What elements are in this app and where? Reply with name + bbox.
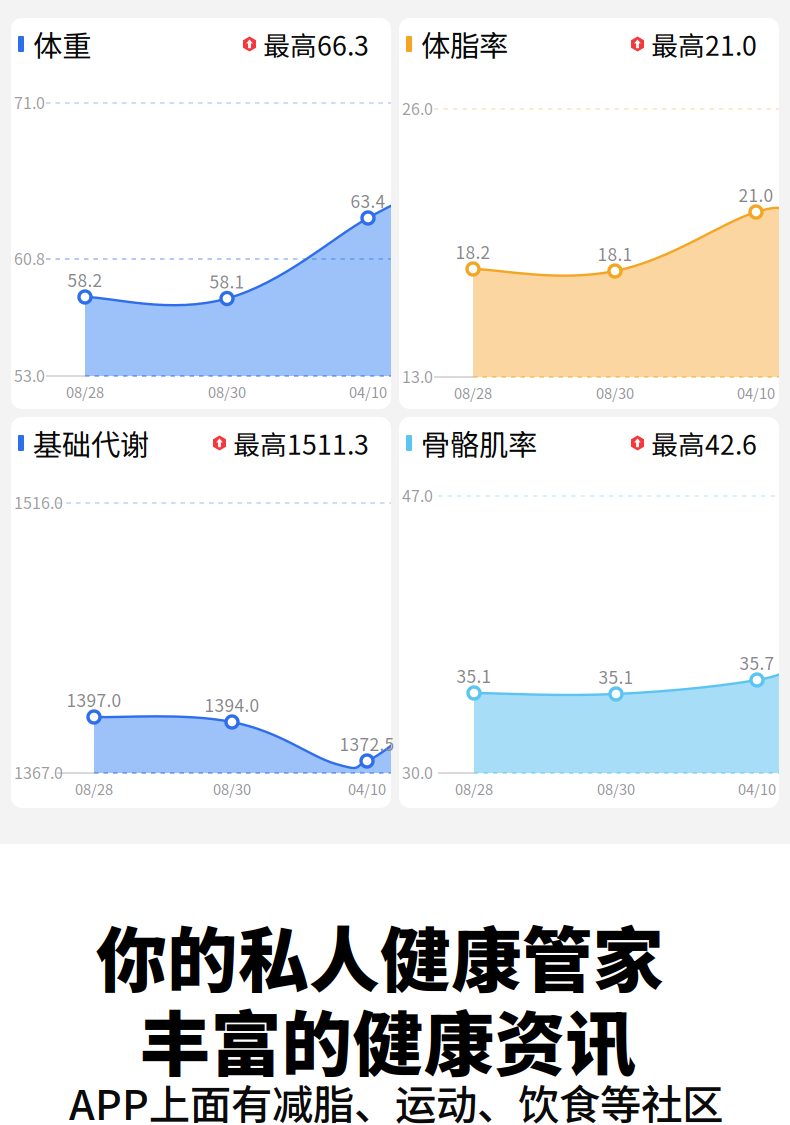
staticText: 53.0	[14, 363, 45, 387]
button[interactable]: 体脂率	[399, 18, 779, 409]
staticText: 最高21.0	[651, 25, 757, 63]
staticText: 35.1	[456, 663, 491, 688]
staticText: 08/28	[455, 778, 493, 799]
staticText: 最高66.3	[263, 25, 369, 63]
staticText: 04/10	[737, 382, 775, 403]
staticText: 63.4	[350, 188, 385, 213]
staticText: 1516.0	[14, 490, 63, 514]
button[interactable]: 骨骼肌率	[399, 417, 779, 808]
staticText: 26.0	[402, 96, 433, 120]
staticText: 最高1511.3	[233, 424, 369, 462]
staticText: 13.0	[402, 364, 433, 388]
staticText: 18.1	[597, 241, 632, 266]
staticText: 08/28	[75, 778, 113, 799]
staticText: 35.1	[598, 664, 633, 689]
staticText: 04/10	[349, 381, 387, 402]
staticText: 08/30	[213, 778, 251, 799]
staticText: APP上面有减脂、运动、饮食等社区	[69, 1072, 723, 1125]
staticText: 08/28	[454, 382, 492, 403]
staticText: 基础代谢	[33, 422, 149, 464]
staticText: 体脂率	[421, 23, 508, 65]
staticText: 71.0	[14, 90, 45, 114]
staticText: 最高42.6	[651, 424, 757, 462]
staticText: 08/30	[597, 778, 635, 799]
staticText: 21.0	[738, 182, 773, 207]
button[interactable]: 体重	[11, 18, 391, 409]
staticText: 丰富的健康资讯	[139, 988, 636, 1090]
staticText: 47.0	[402, 483, 433, 507]
staticText: 1397.0	[66, 687, 121, 712]
staticText: 18.2	[455, 239, 490, 264]
staticText: 1394.0	[204, 692, 259, 717]
staticText: 1367.0	[14, 760, 63, 784]
staticText: 08/30	[208, 381, 246, 402]
button[interactable]: 基础代谢	[11, 417, 391, 808]
staticText: 60.8	[14, 246, 45, 270]
staticText: 08/28	[66, 381, 104, 402]
staticText: 35.7	[739, 650, 774, 675]
staticText: 58.2	[67, 267, 102, 292]
staticText: 08/30	[596, 382, 634, 403]
staticText: 你的私人健康管家	[96, 904, 664, 1006]
staticText: 30.0	[402, 760, 433, 784]
staticText: 04/10	[738, 778, 776, 799]
staticText: 58.1	[209, 268, 244, 294]
staticText: 骨骼肌率	[421, 422, 537, 464]
staticText: 1372.5	[339, 731, 394, 756]
staticText: 体重	[33, 23, 91, 65]
staticText: 04/10	[348, 778, 386, 799]
